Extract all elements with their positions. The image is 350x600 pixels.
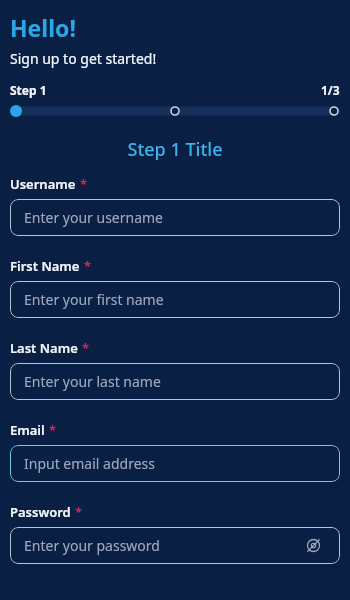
staticText: Enter your password [24, 536, 160, 555]
staticText: Enter your first name [24, 290, 164, 309]
staticText: Hello! [10, 12, 76, 43]
staticText: Step 1 [10, 82, 47, 98]
staticText: * [75, 503, 83, 521]
staticText: Password [10, 503, 71, 521]
button[interactable]: Enter your first name [10, 281, 340, 318]
button[interactable]: Enter your username [10, 199, 340, 236]
button[interactable]: Enter your password [10, 527, 340, 564]
staticText: Email [10, 421, 45, 439]
button[interactable]: Show password [300, 527, 326, 564]
staticText: * [49, 421, 57, 439]
staticText: Sign up to get started! [10, 49, 157, 68]
staticText: Enter your last name [24, 372, 161, 391]
staticText: First Name [10, 257, 80, 275]
staticText: Last Name [10, 339, 78, 357]
staticText: * [84, 257, 92, 275]
staticText: Step 1 Title [127, 137, 223, 162]
staticText: 1/3 [321, 82, 340, 98]
button[interactable]: Input email address [10, 445, 340, 482]
staticText: Username [10, 175, 76, 193]
staticText: * [82, 339, 90, 357]
staticText: * [80, 175, 88, 193]
staticText: Enter your username [24, 208, 164, 227]
staticText: Input email address [24, 454, 155, 473]
button[interactable]: Enter your last name [10, 363, 340, 400]
